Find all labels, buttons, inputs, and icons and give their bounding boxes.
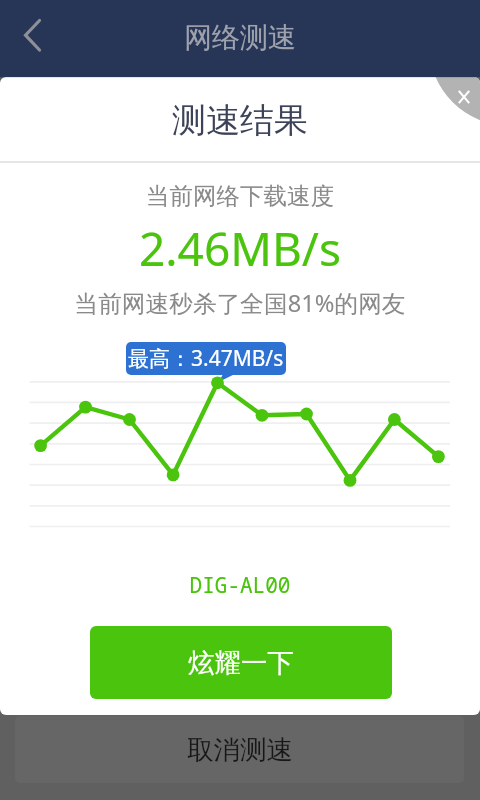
staticText: 当前网速秒杀了全国81%的网友 bbox=[0, 287, 480, 319]
button[interactable]: Close bbox=[0, 77, 480, 715]
button[interactable]: 炫耀一下 bbox=[90, 626, 392, 699]
staticText: 网络测速 bbox=[184, 20, 296, 55]
staticText: 2.46MB/s bbox=[0, 217, 480, 280]
staticText: 取消测速 bbox=[187, 733, 293, 766]
button[interactable]: Back bbox=[0, 0, 62, 77]
staticText: DIG-AL00 bbox=[0, 571, 480, 600]
staticText: 炫耀一下 bbox=[188, 646, 294, 679]
staticText: 最高：3.47MB/s bbox=[128, 344, 284, 373]
button[interactable]: 取消测速 bbox=[15, 716, 464, 783]
staticText: 当前网络下载速度 bbox=[0, 181, 480, 211]
staticText: 测速结果 bbox=[0, 99, 480, 142]
